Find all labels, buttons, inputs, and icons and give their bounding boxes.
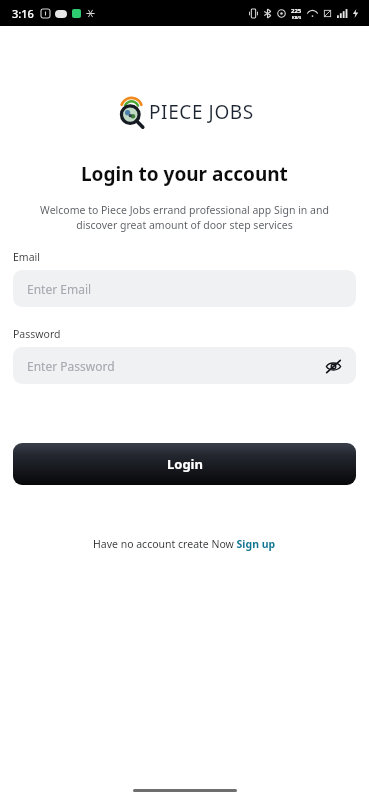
staticText: Login to your account bbox=[81, 161, 288, 187]
staticText: PIECE JOBS bbox=[149, 99, 254, 125]
staticText: 3:16 bbox=[12, 6, 34, 21]
staticText: KB/S bbox=[292, 15, 302, 20]
staticText: Password bbox=[13, 327, 61, 341]
staticText: Welcome to Piece Jobs errand professiona… bbox=[22, 203, 347, 232]
staticText: Enter Email bbox=[27, 281, 92, 297]
staticText: Enter Password bbox=[27, 358, 115, 374]
staticText: Email bbox=[13, 250, 40, 264]
staticText: Have no account create Now Sign up bbox=[93, 537, 276, 551]
button[interactable]: Login bbox=[13, 443, 356, 485]
staticText: 225 bbox=[291, 7, 302, 15]
button[interactable]: Password field bbox=[13, 347, 356, 384]
button[interactable]: Have no account create Now Sign up bbox=[89, 535, 280, 553]
button[interactable]: Email field bbox=[13, 270, 356, 307]
button[interactable]: Toggle password visibility bbox=[320, 353, 346, 379]
staticText: Login bbox=[167, 455, 203, 473]
